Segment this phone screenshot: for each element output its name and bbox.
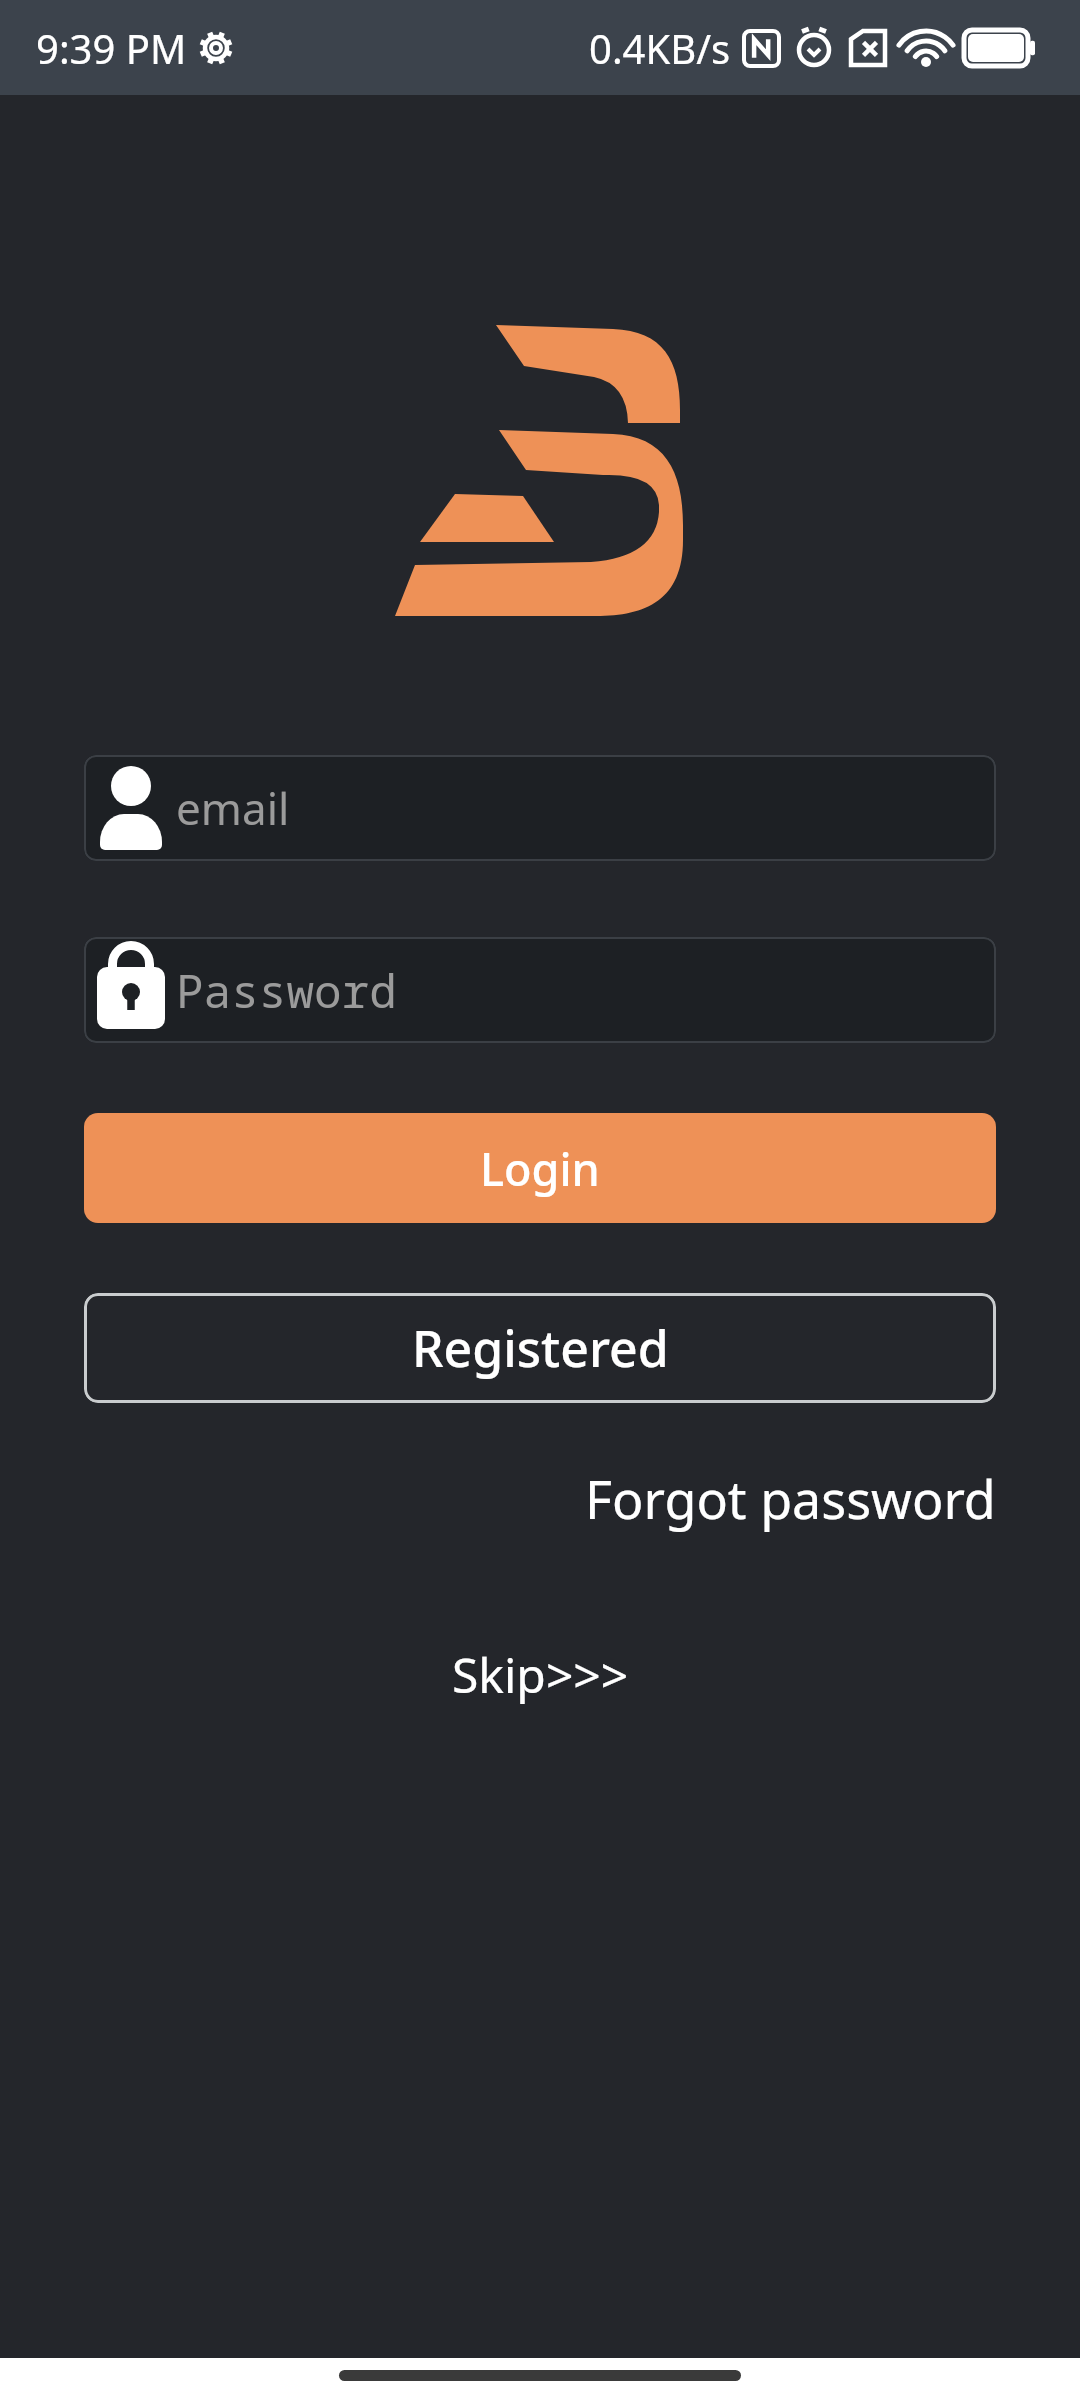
staticText: Registered <box>412 1314 669 1382</box>
button[interactable]: Skip>>> <box>452 1642 629 1707</box>
button[interactable]: Forgot password <box>585 1463 996 1534</box>
button[interactable]: Registered <box>84 1293 996 1403</box>
staticText: email <box>176 778 290 838</box>
staticText: 9:39 PM <box>36 21 187 75</box>
button[interactable]: Password <box>84 937 996 1043</box>
staticText: 0.4KB/s <box>589 21 731 75</box>
button[interactable]: Login <box>84 1113 996 1223</box>
staticText: Login <box>480 1138 600 1199</box>
staticText: Password <box>176 959 397 1022</box>
button[interactable]: email <box>84 755 996 861</box>
